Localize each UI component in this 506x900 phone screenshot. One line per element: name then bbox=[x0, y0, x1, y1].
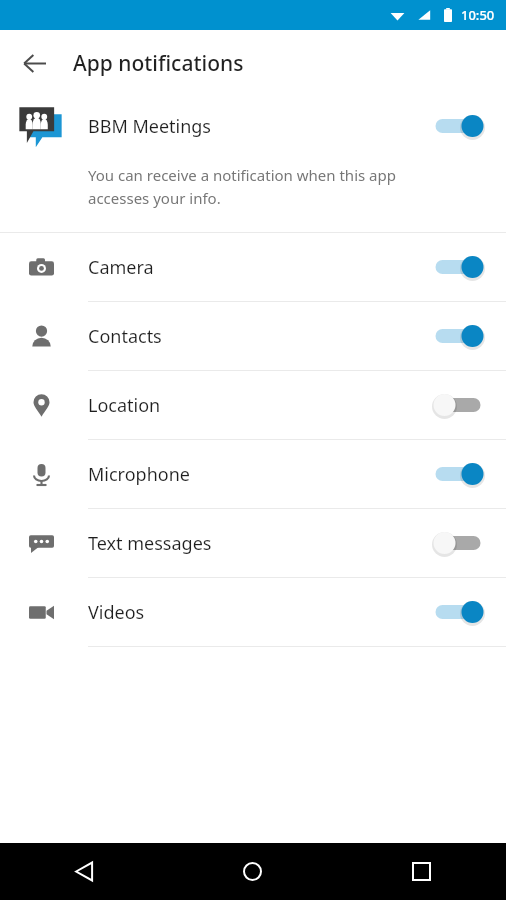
other: Microphone bbox=[29, 462, 54, 487]
button[interactable]: Text messages bbox=[0, 509, 506, 577]
staticText: App notifications bbox=[73, 49, 244, 78]
staticText: Location bbox=[88, 393, 161, 418]
button[interactable]: On bbox=[431, 458, 485, 490]
button[interactable]: On bbox=[431, 596, 485, 628]
other: Videos bbox=[29, 600, 54, 625]
staticText: Camera bbox=[88, 255, 154, 280]
button[interactable]: On bbox=[431, 110, 485, 142]
staticText: BBM Meetings bbox=[88, 114, 211, 139]
button[interactable]: Off bbox=[431, 389, 485, 421]
staticText: Text messages bbox=[88, 531, 212, 556]
staticText: 10:50 bbox=[461, 6, 495, 24]
button[interactable]: Camera bbox=[0, 233, 506, 301]
staticText: You can receive a notification when this… bbox=[88, 165, 444, 208]
button[interactable]: Home bbox=[168, 843, 337, 900]
other: Location bbox=[29, 393, 54, 418]
other: Contacts bbox=[29, 324, 54, 349]
button[interactable]: Videos bbox=[0, 578, 506, 646]
button[interactable]: Microphone bbox=[0, 440, 506, 508]
staticText: Contacts bbox=[88, 324, 162, 349]
other: Camera bbox=[29, 255, 54, 280]
button[interactable]: Back bbox=[11, 40, 57, 86]
button[interactable]: Off bbox=[431, 527, 485, 559]
button[interactable]: On bbox=[431, 251, 485, 283]
staticText: Microphone bbox=[88, 462, 190, 487]
button[interactable]: On bbox=[431, 320, 485, 352]
button[interactable]: Recent apps bbox=[337, 843, 506, 900]
staticText: Videos bbox=[88, 600, 145, 625]
button[interactable]: Location bbox=[0, 371, 506, 439]
other: Text messages bbox=[29, 531, 54, 556]
button[interactable]: BBM Meetings bbox=[0, 96, 506, 156]
button[interactable]: Contacts bbox=[0, 302, 506, 370]
button[interactable]: Back bbox=[0, 843, 168, 900]
